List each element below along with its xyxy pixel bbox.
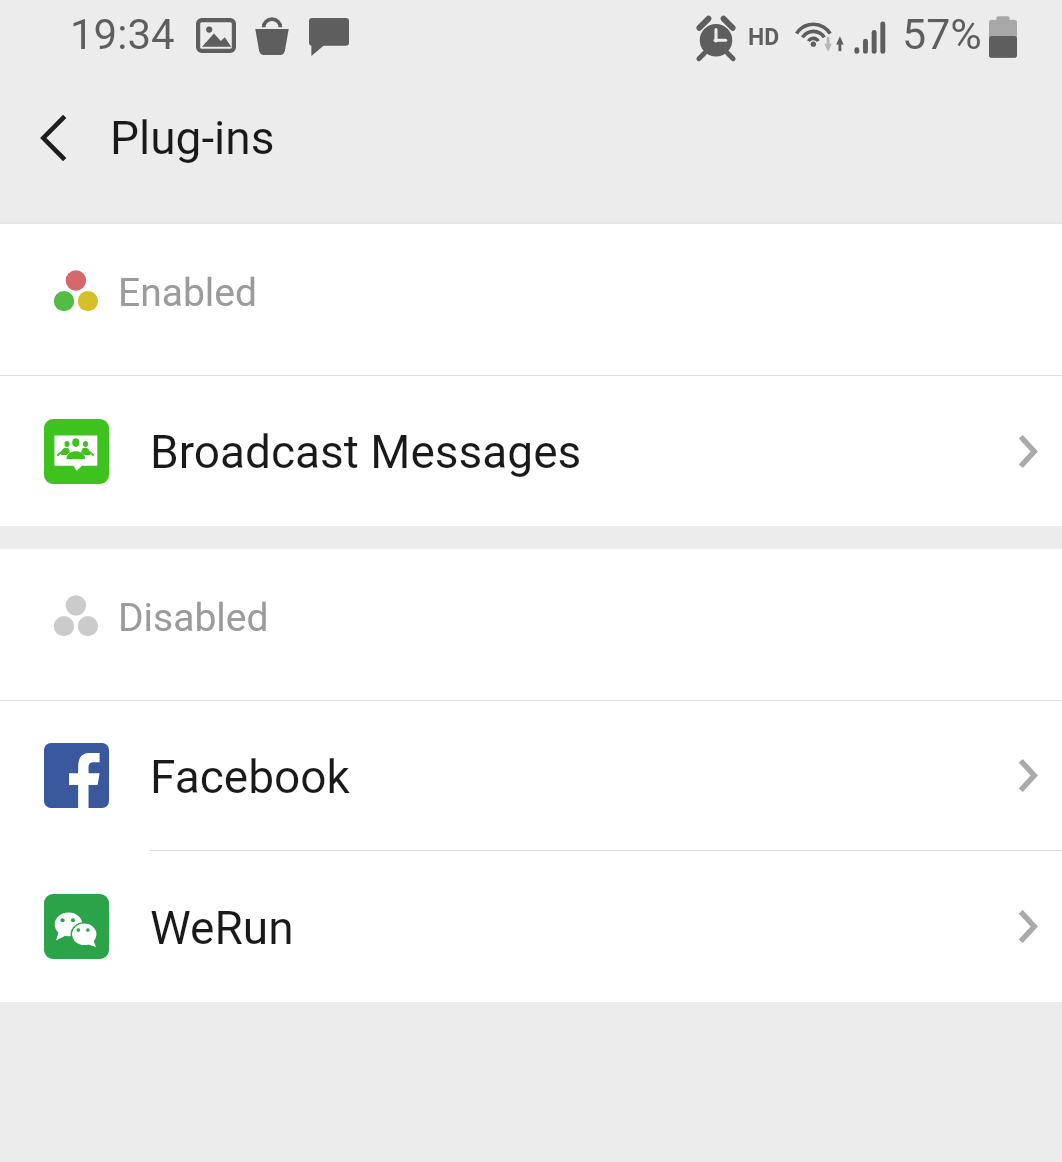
- staticText: 57%: [902, 9, 982, 59]
- button[interactable]: Broadcast Messages: [0, 376, 1062, 526]
- staticText: 19:34: [70, 10, 175, 59]
- staticText: Broadcast Messages: [150, 425, 582, 479]
- staticText: WeRun: [150, 901, 294, 955]
- button[interactable]: WeRun: [0, 851, 1062, 1002]
- button[interactable]: Facebook: [0, 701, 1062, 850]
- staticText: Enabled: [118, 270, 257, 316]
- staticText: Plug-ins: [110, 111, 275, 165]
- staticText: HD: [748, 24, 780, 51]
- staticText: Facebook: [150, 750, 350, 804]
- button[interactable]: Back: [0, 78, 110, 222]
- staticText: Disabled: [118, 595, 269, 641]
